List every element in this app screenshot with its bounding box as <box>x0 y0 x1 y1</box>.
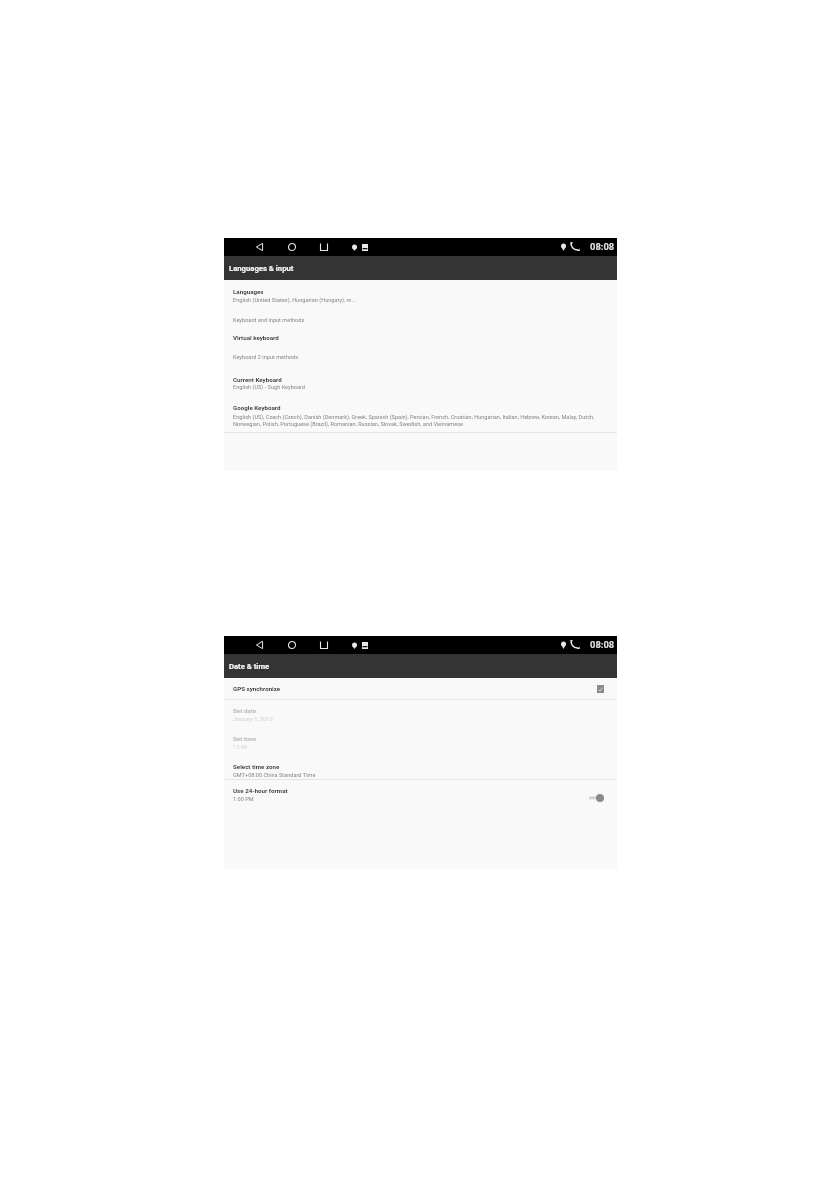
staticText: Languages & input <box>229 264 294 273</box>
button[interactable]: Home <box>284 639 300 651</box>
staticText: Languages <box>233 288 264 295</box>
button[interactable]: Back <box>251 639 267 651</box>
button[interactable]: Virtual keyboard <box>224 334 617 341</box>
button[interactable]: Keyboard 2 input methods <box>224 354 617 361</box>
staticText: 08:08 <box>590 639 615 650</box>
staticText: Date & time <box>229 662 270 671</box>
button[interactable]: Keyboard and input methods <box>224 317 617 324</box>
button[interactable]: GPS synchronize checkbox <box>597 685 604 693</box>
staticText: Select time zone <box>233 763 280 770</box>
staticText: 11:49 <box>233 744 247 751</box>
button[interactable]: Screenshot <box>359 639 371 651</box>
staticText: Keyboard 2 input methods <box>233 354 299 361</box>
staticText: Set date <box>233 707 257 714</box>
button[interactable]: Google Keyboard <box>224 404 617 428</box>
button[interactable]: Set time <box>224 735 617 751</box>
staticText: GPS synchronize <box>233 685 281 692</box>
staticText: 08:08 <box>590 241 615 252</box>
staticText: English (United States), Hungarian (Hung… <box>233 297 356 304</box>
button[interactable]: Set date <box>224 707 617 723</box>
button[interactable]: Volume <box>350 639 358 651</box>
button[interactable]: GPS synchronize <box>224 678 617 699</box>
button[interactable]: Languages <box>224 288 617 304</box>
staticText: Current Keyboard <box>233 376 282 383</box>
button[interactable]: Back <box>251 241 267 253</box>
staticText: Use 24-hour format <box>233 787 288 794</box>
staticText: Set time <box>233 735 257 742</box>
staticText: 1:00 PM <box>233 796 254 803</box>
staticText: January 1, 2015 <box>233 716 273 723</box>
staticText: Google Keyboard <box>233 404 281 411</box>
staticText: English (US), Czech (Czech), Danish (Den… <box>233 414 604 428</box>
button[interactable]: Use 24-hour format toggle <box>589 794 604 802</box>
staticText: Keyboard and input methods <box>233 317 305 324</box>
button[interactable]: Select time zone <box>224 763 617 779</box>
staticText: English (US) - Sugh Keyboard <box>233 384 306 391</box>
button[interactable]: Home <box>284 241 300 253</box>
button[interactable]: Recent apps <box>316 241 332 253</box>
staticText: GMT+08:00 China Standard Time <box>233 772 316 779</box>
button[interactable]: Recent apps <box>316 639 332 651</box>
button[interactable]: Screenshot <box>359 241 371 253</box>
button[interactable]: Current Keyboard <box>224 376 617 391</box>
button[interactable]: Use 24-hour format <box>224 780 617 809</box>
button[interactable]: Volume <box>350 241 358 253</box>
staticText: Virtual keyboard <box>233 334 279 341</box>
